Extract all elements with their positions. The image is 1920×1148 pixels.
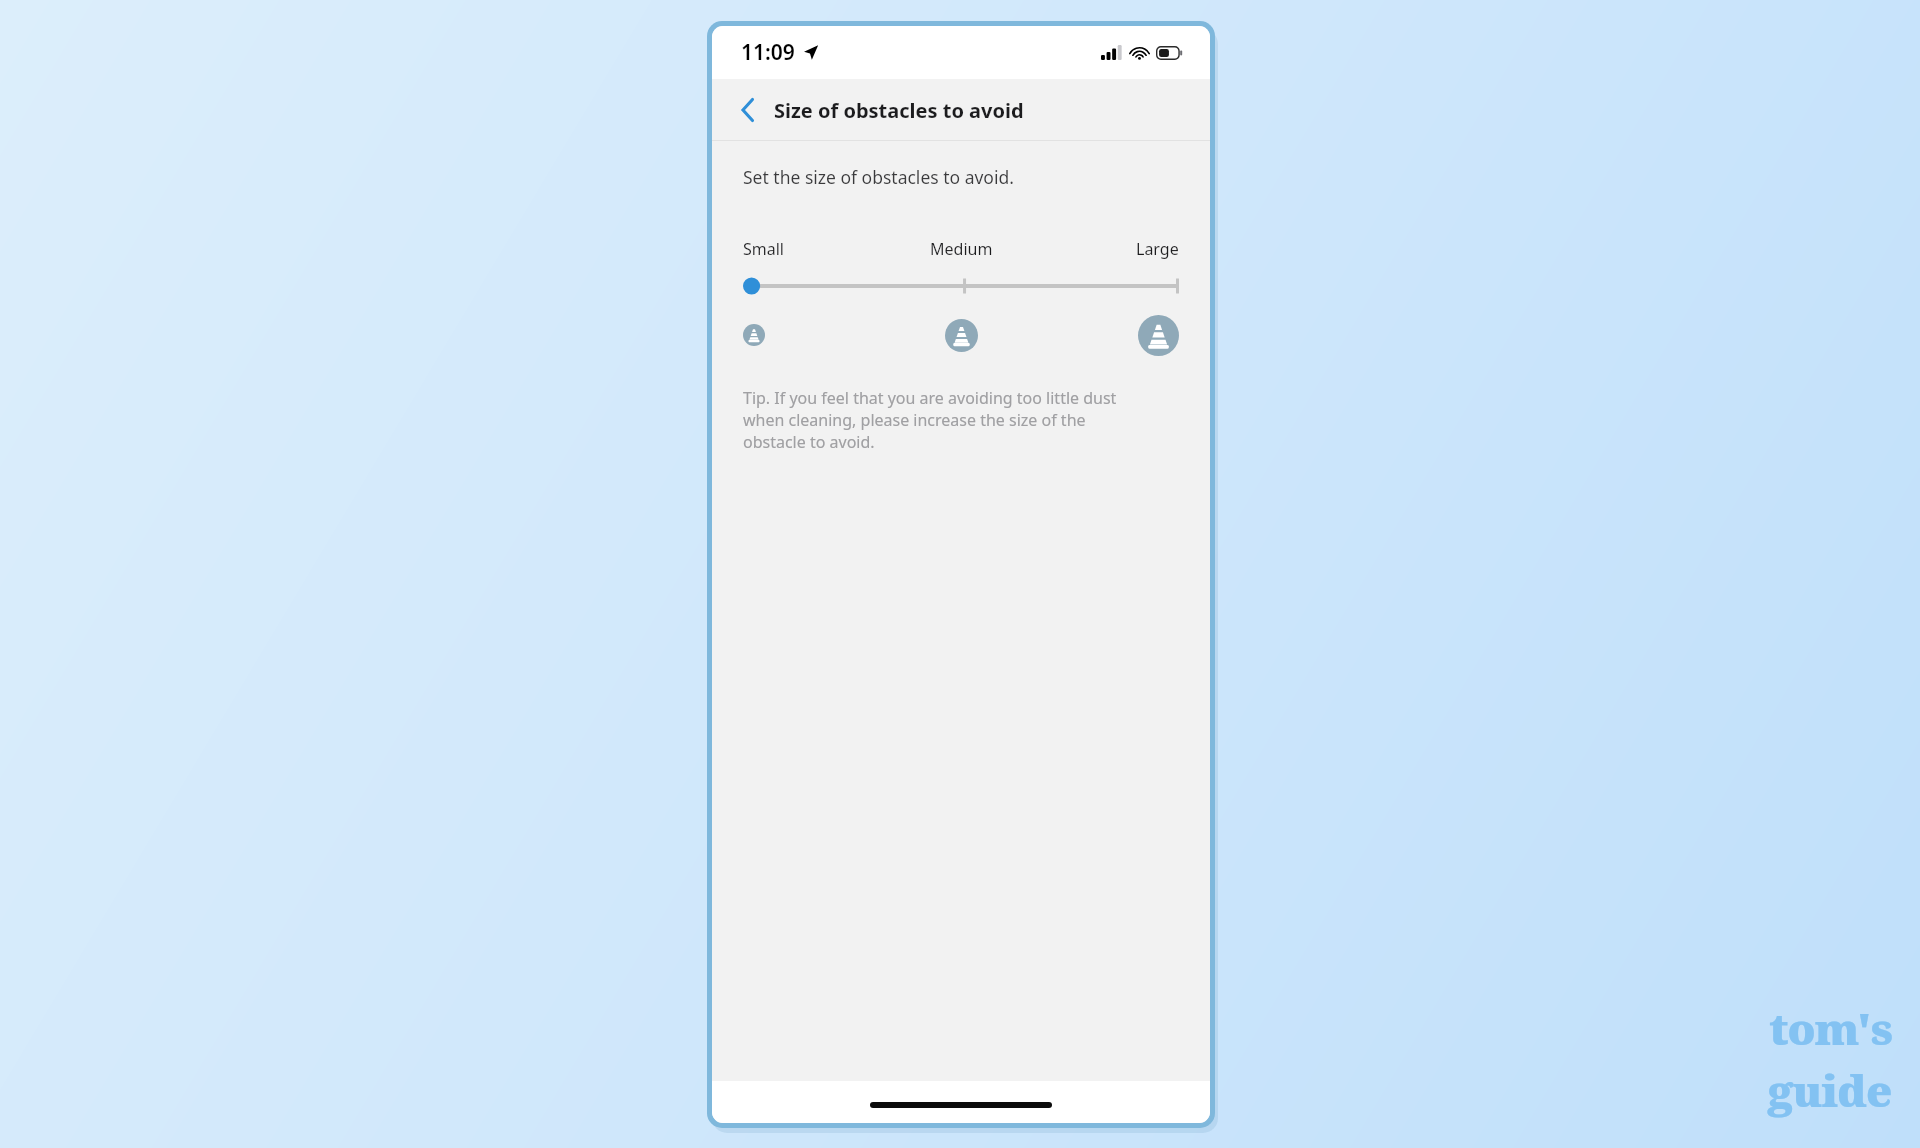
button[interactable]: Obstacle size option bbox=[1138, 315, 1179, 356]
staticText: Set the size of obstacles to avoid. bbox=[743, 165, 1014, 189]
button[interactable]: Obstacle size slider bbox=[743, 273, 1179, 299]
button[interactable]: Back bbox=[730, 92, 766, 128]
staticText: Size of obstacles to avoid bbox=[774, 97, 1024, 124]
staticText: 11:09 bbox=[741, 38, 795, 67]
staticText: guide bbox=[1768, 1060, 1892, 1120]
staticText: Large bbox=[1136, 238, 1179, 260]
staticText: tom's bbox=[1769, 998, 1892, 1058]
staticText: when cleaning, please increase the size … bbox=[743, 409, 1086, 431]
staticText: Medium bbox=[930, 238, 993, 260]
staticText: Tip. If you feel that you are avoiding t… bbox=[743, 387, 1117, 409]
staticText: obstacle to avoid. bbox=[743, 431, 875, 453]
staticText: Small bbox=[743, 238, 784, 260]
button[interactable]: Obstacle size option bbox=[945, 319, 978, 352]
button[interactable]: Obstacle size option bbox=[743, 324, 765, 346]
